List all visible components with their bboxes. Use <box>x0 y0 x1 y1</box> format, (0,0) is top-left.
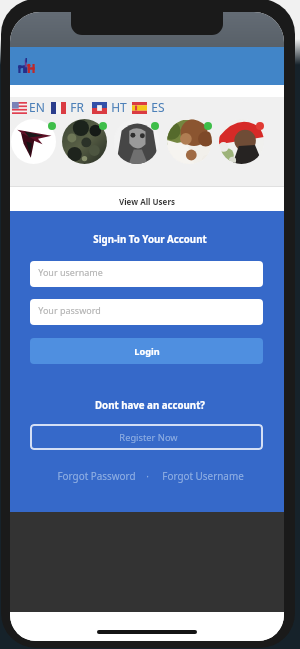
staticText: ES <box>151 99 165 115</box>
button[interactable]: User 5 <box>219 119 264 164</box>
staticText: Your password <box>38 304 101 316</box>
button[interactable]: User 4 <box>167 119 212 164</box>
staticText: Forgot Password <box>57 469 136 482</box>
staticText: Your username <box>38 266 103 278</box>
staticText: EN <box>29 99 45 115</box>
button[interactable] <box>91 100 128 118</box>
staticText: Dont have an account? <box>95 399 205 412</box>
button[interactable]: User 1 <box>11 119 56 164</box>
button[interactable]: Forgot Password <box>57 469 136 482</box>
staticText: View All Users <box>119 196 175 207</box>
staticText: HT <box>111 99 127 115</box>
button[interactable]: User 3 <box>114 119 159 164</box>
staticText: Forgot Username <box>162 469 244 482</box>
staticText: FR <box>70 99 84 115</box>
button[interactable]: Register Now <box>30 424 263 450</box>
button[interactable]: Login <box>30 338 263 364</box>
button[interactable]: User 2 <box>62 119 107 164</box>
button[interactable] <box>11 100 45 118</box>
button[interactable] <box>10 187 284 211</box>
button[interactable] <box>131 100 167 118</box>
button[interactable]: Forgot Username <box>162 469 244 482</box>
button[interactable]: Home <box>18 58 35 73</box>
button[interactable]: Your password <box>30 299 263 325</box>
button[interactable] <box>50 100 87 118</box>
staticText: Login <box>134 345 160 358</box>
staticText: Sign-in To Your Account <box>93 233 207 246</box>
button[interactable]: Your username <box>30 261 263 287</box>
staticText: Register Now <box>119 431 178 444</box>
staticText: · <box>146 469 149 482</box>
